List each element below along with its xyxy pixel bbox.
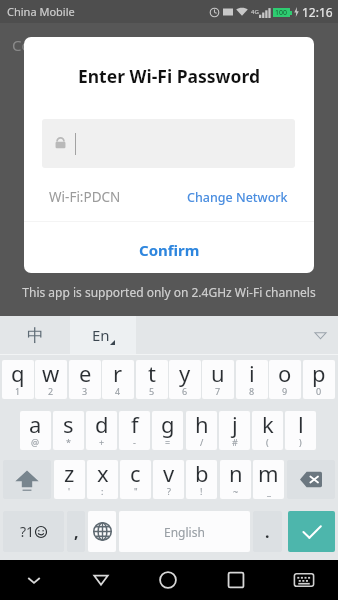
- staticText: .: [265, 521, 270, 543]
- staticText: w: [42, 360, 60, 388]
- button[interactable]: .: [253, 511, 282, 552]
- staticText: China Mobile: [7, 4, 75, 19]
- staticText: Change Network: [187, 189, 288, 206]
- staticText: ): [299, 436, 302, 448]
- staticText: @: [31, 436, 40, 448]
- button[interactable]: [42, 119, 295, 168]
- staticText: k: [262, 411, 274, 439]
- staticText: 100: [275, 8, 288, 17]
- staticText: !: [200, 485, 203, 497]
- button[interactable]: Shift: [3, 460, 51, 499]
- staticText: t: [148, 360, 156, 388]
- button[interactable]: y: [169, 360, 201, 399]
- button[interactable]: o: [269, 360, 301, 399]
- button[interactable]: Change Network: [187, 189, 288, 206]
- staticText: 12:16: [302, 4, 333, 20]
- staticText: c: [130, 460, 141, 488]
- button[interactable]: a: [20, 411, 51, 450]
- staticText: *: [66, 436, 71, 448]
- button[interactable]: e: [69, 360, 101, 399]
- button[interactable]: b: [186, 460, 217, 499]
- staticText: u: [211, 360, 225, 388]
- button[interactable]: g: [152, 411, 183, 450]
- button[interactable]: Backspace: [287, 460, 335, 499]
- staticText: (: [266, 436, 269, 448]
- button[interactable]: Keyboard switcher: [270, 560, 338, 600]
- staticText: This app is supported only on 2.4GHz Wi-…: [0, 284, 338, 300]
- staticText: 7: [215, 385, 221, 397]
- staticText: g: [161, 411, 175, 439]
- button[interactable]: c: [120, 460, 151, 499]
- staticText: e: [79, 360, 92, 388]
- button[interactable]: u: [202, 360, 234, 399]
- button[interactable]: i: [236, 360, 268, 399]
- button[interactable]: k: [252, 411, 283, 450]
- button[interactable]: p: [303, 360, 335, 399]
- button[interactable]: Confirm: [24, 227, 314, 273]
- button[interactable]: Change input language: [88, 511, 116, 552]
- staticText: d: [95, 411, 109, 439]
- staticText: Connect: [12, 35, 71, 55]
- button[interactable]: n: [220, 460, 251, 499]
- staticText: o: [278, 360, 292, 388]
- staticText: 5: [149, 385, 155, 397]
- button[interactable]: v: [153, 460, 184, 499]
- staticText: n: [229, 460, 243, 488]
- staticText: j: [232, 411, 238, 439]
- button[interactable]: ,: [67, 511, 85, 552]
- staticText: 4G: [251, 8, 259, 16]
- staticText: -: [133, 436, 136, 448]
- button[interactable]: s: [53, 411, 84, 450]
- staticText: ~: [233, 485, 239, 497]
- staticText: Confirm: [139, 240, 200, 260]
- button[interactable]: Enter: [288, 511, 335, 552]
- button[interactable]: q: [2, 360, 34, 399]
- staticText: =: [165, 436, 171, 448]
- staticText: 0: [316, 385, 322, 397]
- staticText: s: [63, 411, 74, 439]
- staticText: h: [195, 411, 209, 439]
- staticText: Wi-Fi:PDCN: [49, 188, 121, 206]
- button[interactable]: English: [119, 511, 250, 552]
- button[interactable]: Hide keyboard: [0, 560, 67, 600]
- staticText: #: [232, 436, 238, 448]
- button[interactable]: x: [87, 460, 118, 499]
- staticText: 2: [48, 385, 54, 397]
- staticText: 3: [82, 385, 88, 397]
- staticText: v: [163, 460, 175, 488]
- staticText: ,: [74, 521, 79, 543]
- staticText: 1: [15, 385, 21, 397]
- button[interactable]: z: [54, 460, 85, 499]
- staticText: q: [11, 360, 25, 388]
- staticText: f: [131, 411, 139, 439]
- staticText: b: [195, 460, 209, 488]
- staticText: En: [92, 325, 110, 345]
- staticText: ?: [167, 485, 171, 497]
- staticText: English: [164, 524, 205, 540]
- button[interactable]: Hide keyboard: [302, 316, 338, 354]
- button[interactable]: ?1: [3, 511, 64, 552]
- button[interactable]: Recents: [202, 560, 270, 600]
- button[interactable]: f: [119, 411, 150, 450]
- button[interactable]: w: [35, 360, 67, 399]
- staticText: _: [267, 485, 271, 497]
- button[interactable]: m: [253, 460, 284, 499]
- button[interactable]: Home: [134, 560, 202, 600]
- button[interactable]: h: [186, 411, 217, 450]
- button[interactable]: Back: [67, 560, 134, 600]
- button[interactable]: 中: [0, 316, 70, 354]
- button[interactable]: l: [285, 411, 316, 450]
- button[interactable]: j: [219, 411, 250, 450]
- staticText: 6: [182, 385, 188, 397]
- button[interactable]: r: [102, 360, 134, 399]
- staticText: y: [179, 360, 191, 388]
- staticText: +: [99, 436, 105, 448]
- staticText: 8: [249, 385, 255, 397]
- staticText: ": [134, 485, 138, 497]
- staticText: :: [101, 485, 104, 497]
- button[interactable]: d: [86, 411, 117, 450]
- button[interactable]: En: [70, 316, 136, 354]
- staticText: Enter Wi-Fi Password: [24, 64, 314, 88]
- button[interactable]: t: [136, 360, 168, 399]
- staticText: 9: [282, 385, 288, 397]
